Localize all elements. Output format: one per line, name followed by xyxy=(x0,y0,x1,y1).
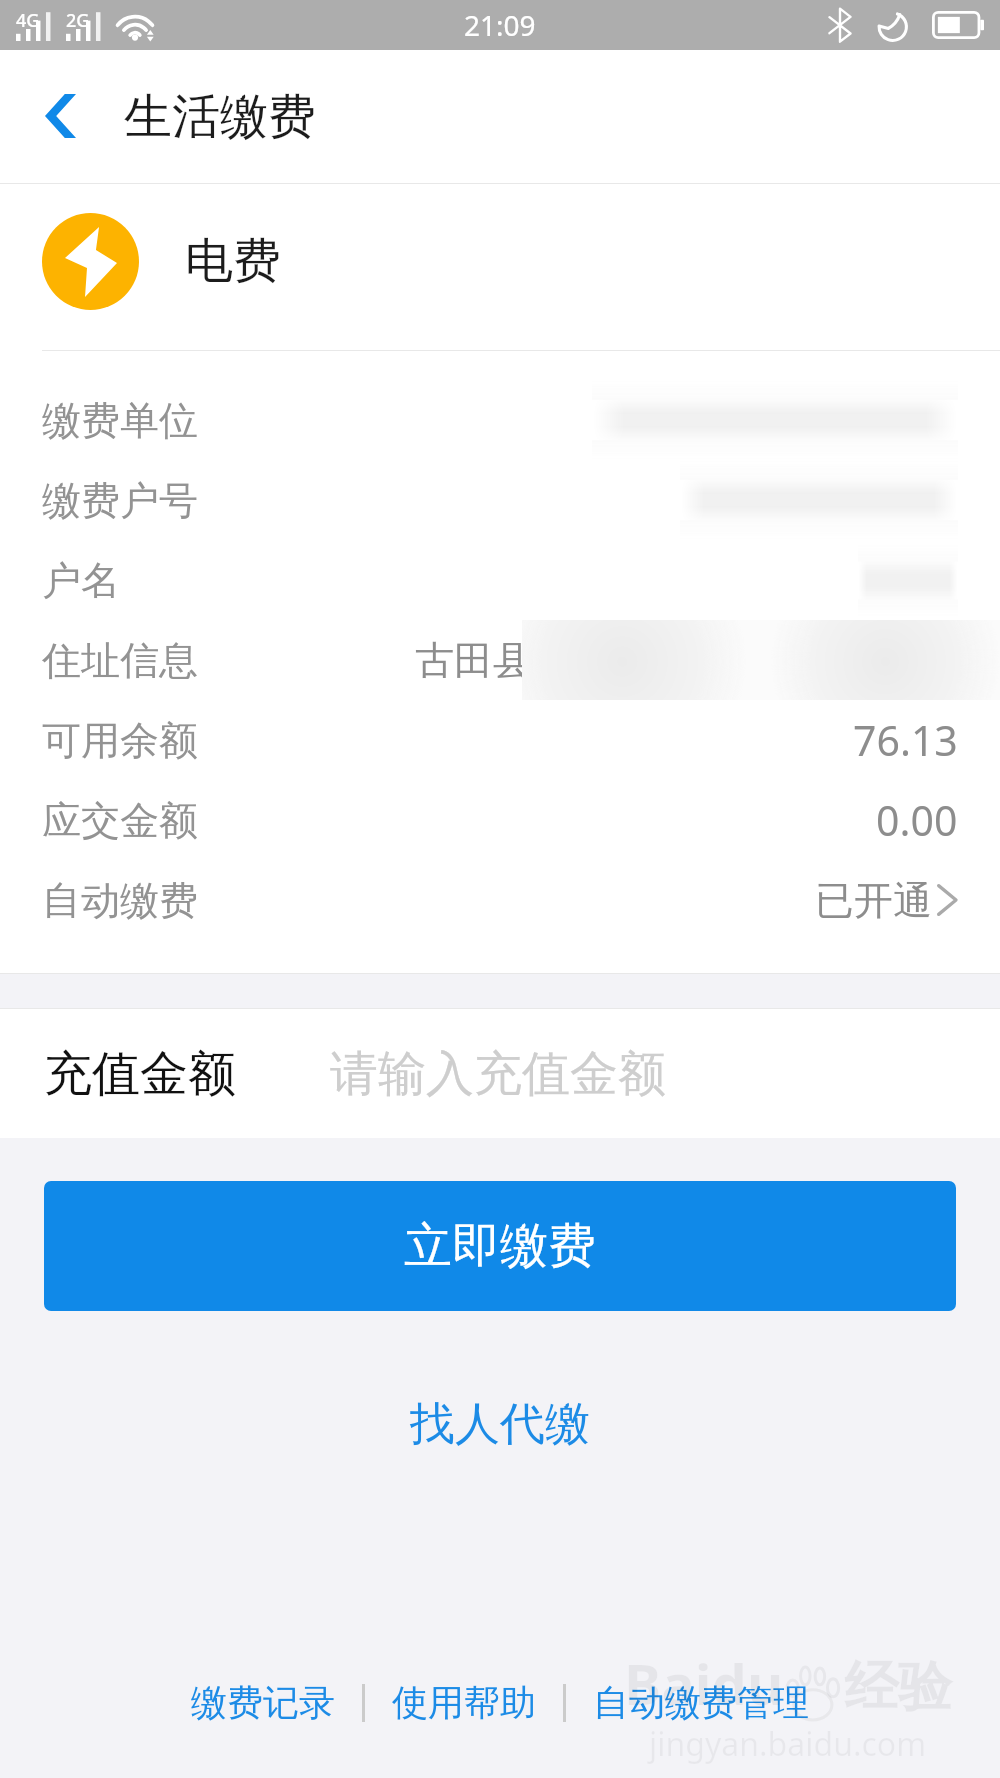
staticText: 21:09 xyxy=(464,6,536,44)
staticText: 古田县 xyxy=(415,636,532,685)
button[interactable]: 找人代缴 xyxy=(370,1388,630,1461)
staticText: 找人代缴 xyxy=(410,1396,590,1453)
staticText: 立即缴费 xyxy=(404,1216,596,1276)
staticText: 充值金额 xyxy=(44,1044,236,1104)
staticText: 4G xyxy=(16,8,40,33)
staticText: 生活缴费 xyxy=(124,87,316,147)
staticText: jingyan.baidu.com xyxy=(649,1722,927,1766)
button[interactable]: 自动缴费管理 xyxy=(585,1666,817,1739)
button[interactable]: Back xyxy=(0,55,118,179)
staticText: 可用余额 xyxy=(42,716,198,765)
staticText: 缴费单位 xyxy=(42,396,198,445)
staticText: 已开通 xyxy=(815,876,932,925)
staticText: 自动缴费 xyxy=(42,876,198,925)
staticText: 经验 xyxy=(844,1653,952,1721)
staticText: 使用帮助 xyxy=(392,1680,536,1725)
staticText: 自动缴费管理 xyxy=(593,1680,809,1725)
staticText: 应交金额 xyxy=(42,796,198,845)
staticText: 76.13 xyxy=(853,712,958,768)
button[interactable]: 使用帮助 xyxy=(384,1666,544,1739)
staticText: 2G xyxy=(66,8,90,33)
button[interactable]: 自动缴费 xyxy=(0,860,1000,940)
button[interactable]: 立即缴费 xyxy=(44,1181,956,1311)
staticText: 缴费户号 xyxy=(42,476,198,525)
staticText: 缴费记录 xyxy=(191,1680,335,1725)
staticText: 户名 xyxy=(42,556,120,605)
staticText: 住址信息 xyxy=(42,636,198,685)
staticText: 电费 xyxy=(185,231,281,291)
staticText: 请输入充值金额 xyxy=(330,1044,666,1104)
staticText: Baidu xyxy=(624,1645,784,1721)
button[interactable]: 缴费记录 xyxy=(183,1666,343,1739)
staticText: 0.00 xyxy=(876,792,958,848)
